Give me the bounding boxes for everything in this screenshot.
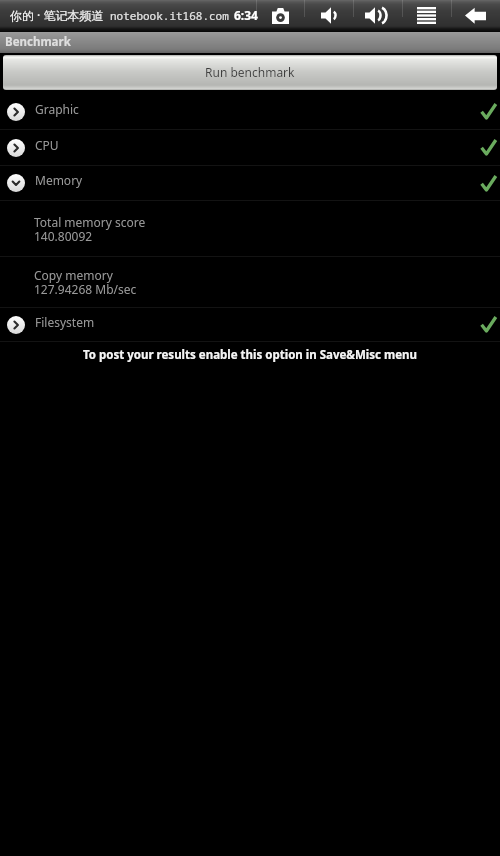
staticText: To post your results enable this option …: [83, 347, 417, 363]
staticText: Memory: [35, 172, 83, 188]
button[interactable]: Memory: [0, 166, 500, 201]
button[interactable]: CPU: [0, 130, 500, 166]
button[interactable]: Run benchmark: [3, 55, 497, 90]
staticText: notebook.it168.com: [110, 8, 229, 23]
staticText: Benchmark: [5, 34, 71, 50]
staticText: Copy memory 127.94268 Mb/sec: [34, 267, 137, 297]
button[interactable]: Graphic: [0, 94, 500, 130]
staticText: 你的 · 笔记本频道: [10, 7, 104, 23]
staticText: Total memory score 140.80092: [34, 214, 146, 244]
button[interactable]: Filesystem: [0, 308, 500, 342]
button[interactable]: Copy memory 127.94268 Mb/sec: [0, 257, 500, 308]
staticText: Graphic: [35, 101, 79, 117]
staticText: Filesystem: [35, 314, 95, 330]
staticText: CPU: [35, 137, 59, 153]
button[interactable]: Camera: [256, 0, 304, 32]
button[interactable]: Menu: [402, 0, 451, 32]
button[interactable]: Volume down: [304, 0, 353, 32]
staticText: Run benchmark: [205, 64, 295, 80]
button[interactable]: Volume up: [353, 0, 402, 32]
button[interactable]: Total memory score 140.80092: [0, 201, 500, 257]
staticText: 6:34: [234, 7, 258, 23]
button[interactable]: Back: [451, 0, 500, 32]
